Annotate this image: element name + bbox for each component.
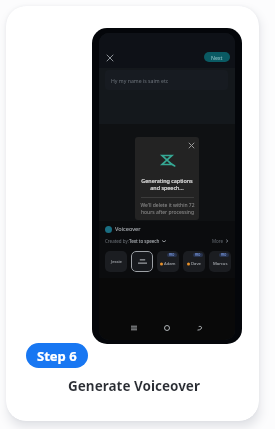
button[interactable]: Next [204,52,230,62]
staticText: Created by: [105,238,129,244]
button[interactable]: Back [193,321,207,335]
button[interactable]: Jessie [105,251,127,272]
staticText: More [212,238,224,244]
staticText: Hy my name is saim etc [111,77,169,84]
staticText: Adam [164,261,176,267]
staticText: Jessie [111,259,122,265]
staticText: PRO [221,253,227,257]
staticText: Dave [191,261,201,267]
staticText: Voiceover [115,225,141,233]
button[interactable]: Step 6 [26,343,88,368]
button[interactable]: Selected voice [131,251,153,272]
button[interactable]: Close [104,52,116,64]
staticText: Step 6 [37,347,77,365]
staticText: PRO [195,253,201,257]
staticText: We'll delete it within 72 hours after pr… [140,202,195,216]
button[interactable]: PRO [209,251,231,272]
staticText: PRO [169,253,175,257]
button[interactable]: PRO [183,251,205,272]
staticText: Text to speech [129,238,160,244]
staticText: Next [211,54,223,61]
staticText: Generating captions and speech... [141,177,193,191]
staticText: Marcus [213,261,228,267]
staticText: Generate Voiceover [6,377,262,395]
button[interactable]: Recents [127,321,141,335]
button[interactable]: Close dialog [188,142,195,149]
button[interactable]: Hy my name is saim etc [105,70,228,90]
button[interactable]: Home [160,321,174,335]
button[interactable]: PRO [157,251,179,272]
button[interactable]: More [212,238,229,244]
